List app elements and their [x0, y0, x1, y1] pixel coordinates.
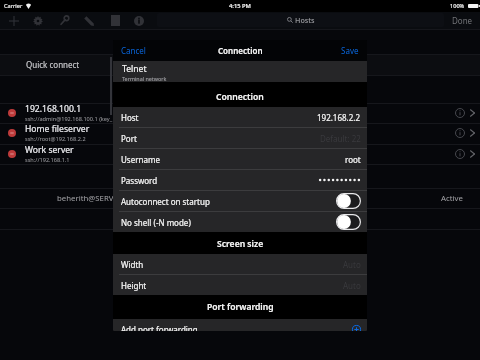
staticText: beherith@SERVER: ~ (ss [57, 193, 144, 204]
button[interactable]: beherith@SERVER: ~ (ss [0, 188, 480, 208]
button[interactable]: More info [455, 149, 465, 159]
button[interactable]: Cancel [121, 45, 146, 56]
staticText: Done [452, 15, 473, 26]
button[interactable]: Username [113, 149, 367, 169]
button[interactable] [336, 193, 361, 209]
staticText: Auto [343, 259, 361, 270]
staticText: Auto [343, 280, 361, 291]
button[interactable]: Add port forwarding [113, 319, 367, 331]
staticText: 100% [450, 2, 465, 10]
staticText: Cancel [121, 45, 146, 56]
button[interactable]: Host [113, 107, 367, 127]
button[interactable]: Stop [105, 12, 125, 29]
button[interactable]: Add [4, 12, 24, 29]
button[interactable]: Hosts [157, 13, 444, 27]
button[interactable]: 192.168.100.1 [0, 103, 480, 123]
button[interactable]: Telnet [113, 61, 367, 82]
staticText: Add port forwarding [121, 324, 198, 331]
staticText: Save [341, 45, 359, 56]
staticText: Port forwarding [207, 301, 274, 313]
button[interactable]: Password [113, 170, 367, 190]
button[interactable]: More info [455, 108, 465, 118]
button[interactable]: Info [129, 12, 149, 29]
staticText: ssh://192.168.1.1 [25, 156, 70, 164]
staticText: Host [121, 112, 139, 123]
staticText: Terminal network [122, 75, 167, 82]
button[interactable]: Settings [28, 12, 48, 29]
staticText: 192.168.100.1 [25, 103, 82, 115]
button[interactable]: Autoconnect on startup [113, 191, 367, 211]
button[interactable]: Width [113, 254, 367, 274]
staticText: Default: 22 [320, 133, 361, 144]
staticText: Password [121, 175, 158, 186]
button[interactable]: No shell (-N mode) [113, 212, 367, 232]
button[interactable]: Port [113, 128, 367, 148]
staticText: root [345, 154, 361, 165]
staticText: Screen size [217, 238, 264, 250]
staticText: Carrier [4, 2, 23, 10]
button[interactable]: Keys [54, 12, 74, 29]
staticText: Username [121, 154, 160, 165]
staticText: Active [441, 193, 463, 204]
staticText: 4:15 PM [229, 2, 251, 10]
button[interactable] [336, 214, 361, 230]
staticText: ssh://root@192.168.2.2 [25, 135, 86, 143]
button[interactable]: More info [455, 128, 465, 138]
staticText: Connection [218, 45, 263, 56]
staticText: Width [121, 259, 144, 270]
staticText: 192.168.2.2 [317, 112, 361, 123]
staticText: ssh://admin@192.168.100.1 (key_ [25, 115, 113, 123]
other: Add port forwarding [352, 325, 361, 331]
staticText: Port [121, 133, 137, 144]
button[interactable]: Save [341, 45, 359, 56]
button[interactable]: Edit [79, 12, 99, 29]
button[interactable]: Work server [0, 144, 480, 164]
staticText: No shell (-N mode) [121, 217, 191, 228]
staticText: Home fileserver [25, 123, 90, 135]
staticText: Height [121, 280, 147, 291]
staticText: Telnet [122, 63, 147, 75]
button[interactable]: Height [113, 275, 367, 295]
button[interactable]: Quick connect [0, 54, 480, 75]
staticText: Connection [216, 91, 264, 103]
button[interactable]: Done [452, 15, 473, 26]
staticText: Autoconnect on startup [121, 196, 210, 207]
staticText: Work server [25, 144, 74, 156]
staticText: Quick connect [26, 59, 80, 70]
button[interactable]: Home fileserver [0, 123, 480, 143]
staticText: Hosts [295, 15, 315, 25]
